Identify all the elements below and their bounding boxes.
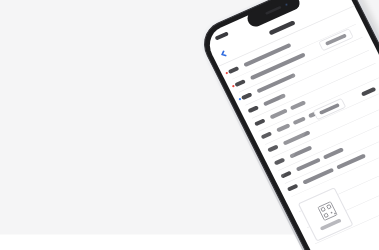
button[interactable]: Phone mockup showing order detail screen — [0, 0, 379, 250]
